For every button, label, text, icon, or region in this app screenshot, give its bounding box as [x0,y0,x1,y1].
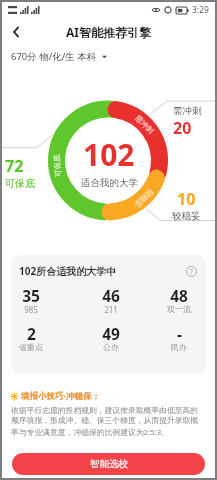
staticText: 35 [22,285,40,306]
staticText: 较稳妥 [132,187,155,210]
staticText: 双一流 [167,304,191,314]
staticText: 72 [5,155,24,177]
staticText: - [177,323,182,344]
staticText: 211 [104,304,118,315]
staticText: 102 [83,134,135,175]
staticText: AI智能推荐引擎 [66,24,151,40]
staticText: 填报小技巧·冲稳保： [21,390,100,402]
staticText: 依据平行志愿的投档规则，建议按录取概率由低至高的顺序填报，形成冲、稳、保三个梯度… [11,405,203,437]
staticText: 可保底 [52,154,63,177]
staticText: 较稳妥 [172,210,201,222]
staticText: 需冲刺 [133,113,156,136]
staticText: 102所合适我的大学中 [19,264,117,278]
staticText: 2 [27,323,36,344]
staticText: 公办 [103,342,119,352]
staticText: 可保底 [5,177,35,190]
staticText: 3:29 [192,4,209,16]
button[interactable]: 智能选校 [12,453,205,475]
button[interactable]: 670分 物/化/生 本科 [11,45,215,67]
staticText: 20 [173,117,192,139]
staticText: 民办 [171,342,187,352]
staticText: 46 [102,285,120,306]
staticText: 48 [170,285,188,306]
button[interactable]: Back [2,18,30,45]
staticText: 49 [102,323,120,344]
staticText: 适合我的大学 [81,177,138,189]
staticText: 670分 物/化/生 本科 [11,50,97,63]
button[interactable]: Help [185,265,198,278]
staticText: 10 [177,188,196,210]
staticText: 985 [24,304,38,315]
staticText: ? [190,267,194,277]
staticText: 智能选校 [90,458,128,470]
staticText: 省重点 [19,342,43,352]
staticText: 需冲刺 [173,105,202,117]
